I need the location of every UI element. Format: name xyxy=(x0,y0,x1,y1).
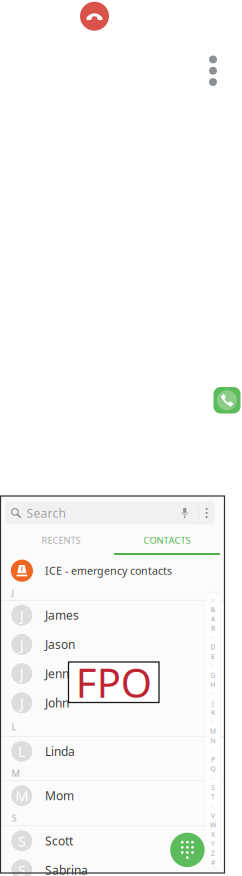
button[interactable]: Voice search xyxy=(171,501,198,524)
staticText: CONTACTS xyxy=(143,534,190,546)
staticText: H xyxy=(211,680,216,689)
button[interactable]: Call xyxy=(213,387,240,413)
staticText: D xyxy=(211,642,216,651)
button[interactable]: RECENTS xyxy=(8,527,114,555)
staticText: S xyxy=(18,831,26,851)
staticText: X xyxy=(211,830,215,839)
staticText: FPO xyxy=(76,656,152,709)
staticText: J xyxy=(20,664,24,683)
staticText: L xyxy=(11,720,16,733)
button[interactable]: CONTACTS xyxy=(114,527,220,555)
staticText: Linda xyxy=(45,743,75,759)
staticText: Q xyxy=(211,764,216,773)
staticText: V xyxy=(211,811,215,820)
staticText: · xyxy=(212,633,214,642)
staticText: · xyxy=(212,746,214,754)
staticText: M xyxy=(11,767,19,779)
staticText: K xyxy=(211,708,215,717)
staticText: J xyxy=(20,693,24,713)
staticText: P xyxy=(211,755,215,764)
staticText: ICE - emergency contacts xyxy=(45,564,172,578)
staticText: Jason xyxy=(45,636,75,652)
button[interactable]: J xyxy=(0,688,224,717)
staticText: Y xyxy=(211,839,215,848)
staticText: M xyxy=(15,786,28,805)
staticText: M xyxy=(210,727,216,736)
button[interactable]: S xyxy=(0,855,224,876)
staticText: · xyxy=(212,717,214,726)
staticText: Sabrina xyxy=(45,862,88,876)
staticText: N xyxy=(211,736,216,745)
staticText: S xyxy=(18,860,26,876)
button[interactable]: M xyxy=(0,781,224,810)
button[interactable]: More options xyxy=(199,501,214,524)
staticText: Z xyxy=(211,849,215,857)
staticText: Jennifer xyxy=(45,666,88,681)
button[interactable]: End call xyxy=(80,2,109,31)
staticText: L xyxy=(18,742,26,761)
staticText: ☆ xyxy=(210,596,216,604)
staticText: # xyxy=(211,858,215,867)
button[interactable]: J xyxy=(0,630,224,659)
staticText: S xyxy=(211,783,215,792)
staticText: G xyxy=(211,671,216,679)
button[interactable]: J xyxy=(0,601,224,630)
button[interactable]: More options xyxy=(205,53,220,88)
staticText: James xyxy=(45,607,79,623)
staticText: B xyxy=(211,624,215,633)
staticText: · xyxy=(212,802,214,811)
button[interactable]: Search xyxy=(5,501,171,524)
staticText: Search xyxy=(26,505,65,521)
staticText: · xyxy=(212,661,214,670)
staticText: J xyxy=(20,635,24,654)
button[interactable]: J xyxy=(0,659,224,688)
staticText: T xyxy=(211,792,215,801)
staticText: S xyxy=(11,812,16,824)
staticText: · xyxy=(212,689,214,698)
staticText: J xyxy=(20,605,24,625)
staticText: Scott xyxy=(45,833,73,849)
staticText: W xyxy=(210,820,216,829)
button[interactable]: L xyxy=(0,737,224,766)
button[interactable]: Dialpad xyxy=(170,833,205,867)
staticText: & xyxy=(211,605,216,614)
staticText: Mom xyxy=(45,788,74,804)
button[interactable]: S xyxy=(0,826,224,855)
staticText: J xyxy=(11,586,14,599)
staticText: · xyxy=(212,774,214,783)
staticText: John xyxy=(45,695,69,711)
staticText: RECENTS xyxy=(41,534,80,546)
staticText: A xyxy=(211,614,215,623)
button[interactable]: ICE - emergency contacts xyxy=(0,556,224,585)
staticText: E xyxy=(211,652,215,661)
staticText: J xyxy=(212,699,214,708)
